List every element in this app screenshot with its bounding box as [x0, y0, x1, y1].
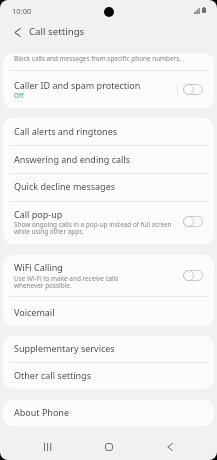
button[interactable]: [3, 71, 214, 107]
button[interactable]: [3, 174, 214, 201]
staticText: Other call settings: [14, 369, 91, 381]
staticText: Voicemail: [14, 306, 55, 318]
button[interactable]: Caller ID and spam protection: [179, 80, 207, 99]
button[interactable]: Back: [155, 433, 185, 460]
button[interactable]: Back: [6, 21, 28, 43]
staticText: WiFi Calling: [14, 261, 63, 273]
button[interactable]: [3, 297, 214, 325]
staticText: Call alerts and ringtones: [14, 125, 118, 137]
staticText: 10:00: [12, 6, 32, 16]
button[interactable]: [3, 363, 214, 388]
staticText: Show ongoing calls in a pop-up instead o…: [14, 220, 176, 235]
staticText: Answering and ending calls: [14, 153, 130, 165]
staticText: Block calls and messages from specific p…: [14, 54, 182, 63]
button[interactable]: [3, 118, 214, 145]
staticText: Supplementary services: [14, 342, 115, 354]
staticText: Off: [14, 91, 24, 100]
staticText: Quick decline messages: [14, 180, 116, 192]
staticText: Use Wi-Fi to make and receive calls when…: [14, 274, 138, 289]
button[interactable]: [3, 146, 214, 173]
button[interactable]: [3, 336, 214, 363]
staticText: About Phone: [14, 406, 69, 418]
button[interactable]: [3, 202, 214, 244]
staticText: Call pop-up: [14, 208, 63, 220]
staticText: Caller ID and spam protection: [14, 79, 141, 91]
button[interactable]: WiFi Calling: [179, 266, 207, 285]
button[interactable]: [3, 53, 214, 71]
button[interactable]: Call pop-up: [179, 212, 207, 231]
button[interactable]: [3, 400, 214, 426]
staticText: Call settings: [29, 25, 85, 38]
button[interactable]: Recent apps: [33, 433, 63, 460]
button[interactable]: [3, 255, 214, 297]
button[interactable]: Home: [94, 433, 124, 460]
